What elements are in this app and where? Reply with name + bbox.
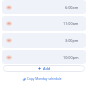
other: Alarm [6,55,12,60]
button[interactable]: Alarm [2,0,86,14]
staticText: 6:00am [65,5,79,10]
button[interactable]: Alarm [2,16,86,31]
button[interactable]: Copy Monday schedule [0,77,88,81]
button[interactable]: Alarm [2,33,86,48]
staticText: 10:00pm [63,55,79,60]
staticText: Add [43,66,51,71]
other: Alarm [6,21,12,26]
staticText: 11:00am [63,21,79,26]
button[interactable]: Add [3,65,85,72]
staticText: Copy Monday schedule [27,77,62,81]
button[interactable]: Alarm [2,50,86,64]
staticText: 3:00pm [65,38,79,43]
other: Alarm [6,38,12,43]
other: Alarm [6,5,12,10]
